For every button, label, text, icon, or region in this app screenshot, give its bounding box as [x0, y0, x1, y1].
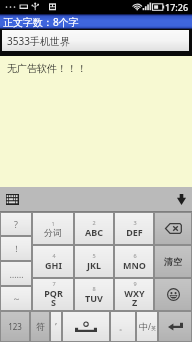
staticText: DEF	[126, 226, 143, 238]
staticText: 正文字数：8个字	[3, 15, 79, 29]
button[interactable]: ！	[1, 237, 31, 260]
button[interactable]: Switch input method	[6, 194, 19, 205]
button[interactable]: ……	[1, 262, 31, 285]
staticText: 3	[133, 219, 137, 226]
button[interactable]: Hide keyboard	[177, 194, 186, 205]
button[interactable]: ?	[1, 213, 31, 235]
button[interactable]: 6	[115, 246, 153, 277]
button[interactable]: 7	[33, 279, 73, 310]
button[interactable]: 3533手机世界	[2, 30, 189, 51]
button[interactable]: Numeric keyboard	[1, 312, 29, 341]
button[interactable]: 。	[111, 312, 135, 341]
staticText: WXY Z	[124, 287, 145, 309]
staticText: 123	[8, 321, 22, 332]
staticText: TUV	[85, 292, 103, 304]
staticText: 17:26	[165, 1, 189, 13]
staticText: 3533手机世界	[7, 34, 70, 48]
staticText: GHI	[45, 259, 62, 271]
staticText: PQR S	[44, 287, 63, 309]
staticText: ！	[12, 243, 21, 254]
staticText: JKL	[87, 259, 101, 271]
staticText: 4	[52, 252, 56, 259]
button[interactable]: 1	[33, 213, 73, 244]
staticText: 清空	[164, 256, 182, 267]
staticText: 5	[92, 252, 96, 259]
staticText: 中	[139, 321, 148, 332]
button[interactable]: Enter	[159, 312, 191, 341]
staticText: 分词	[44, 227, 62, 238]
staticText: 7	[52, 280, 56, 287]
button[interactable]: 9	[115, 279, 153, 310]
staticText: ABC	[85, 226, 103, 238]
button[interactable]	[63, 312, 109, 341]
staticText: 。	[119, 322, 127, 332]
staticText: MNO	[123, 259, 146, 271]
button[interactable]: 8	[75, 279, 113, 310]
staticText: 符	[36, 321, 45, 332]
button[interactable]: Emoji	[155, 279, 191, 310]
button[interactable]: 2	[75, 213, 113, 244]
button[interactable]: 3	[115, 213, 153, 244]
staticText: 6	[133, 252, 137, 259]
staticText: ～	[12, 293, 21, 304]
button[interactable]: 4	[33, 246, 73, 277]
staticText: 8	[92, 285, 96, 292]
button[interactable]: ’	[51, 312, 61, 341]
staticText: ……	[9, 268, 24, 280]
staticText: ’	[55, 321, 57, 332]
staticText: 无广告软件！！！	[7, 62, 87, 75]
staticText: 2	[92, 219, 96, 226]
staticText: 英	[151, 325, 156, 331]
button[interactable]: Symbols	[31, 312, 49, 341]
staticText: 1	[51, 220, 55, 227]
button[interactable]: Clear	[155, 246, 191, 277]
staticText: /	[148, 321, 151, 332]
button[interactable]: 中	[137, 312, 157, 341]
button[interactable]: ～	[1, 287, 31, 310]
button[interactable]: Backspace	[155, 213, 191, 244]
staticText: 9	[133, 280, 137, 287]
staticText: ?	[14, 218, 18, 230]
button[interactable]: 5	[75, 246, 113, 277]
